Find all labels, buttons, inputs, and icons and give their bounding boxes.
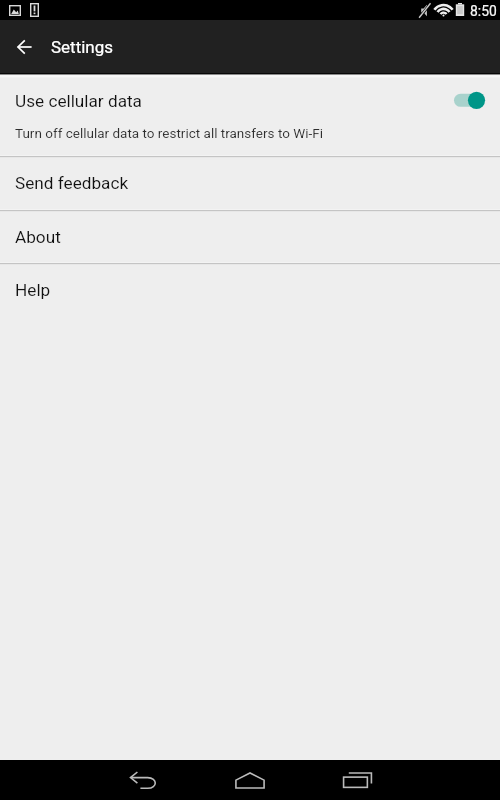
button[interactable]: Use cellular data	[448, 83, 492, 119]
button[interactable]: Use cellular data	[0, 77, 500, 156]
staticText: Help	[15, 280, 51, 300]
button[interactable]: Home	[214, 760, 286, 800]
button[interactable]: Recents	[321, 760, 393, 800]
button[interactable]: Send feedback	[0, 156, 500, 210]
staticText: Use cellular data	[15, 91, 142, 111]
button[interactable]: Help	[0, 263, 500, 317]
button[interactable]: Back	[108, 760, 180, 800]
staticText: About	[15, 227, 61, 247]
staticText: Send feedback	[15, 173, 129, 193]
button[interactable]: About	[0, 210, 500, 263]
staticText: 8:50	[470, 3, 497, 19]
button[interactable]: Back	[1, 24, 47, 70]
staticText: Settings	[51, 37, 114, 57]
staticText: Turn off cellular data to restrict all t…	[15, 125, 323, 141]
